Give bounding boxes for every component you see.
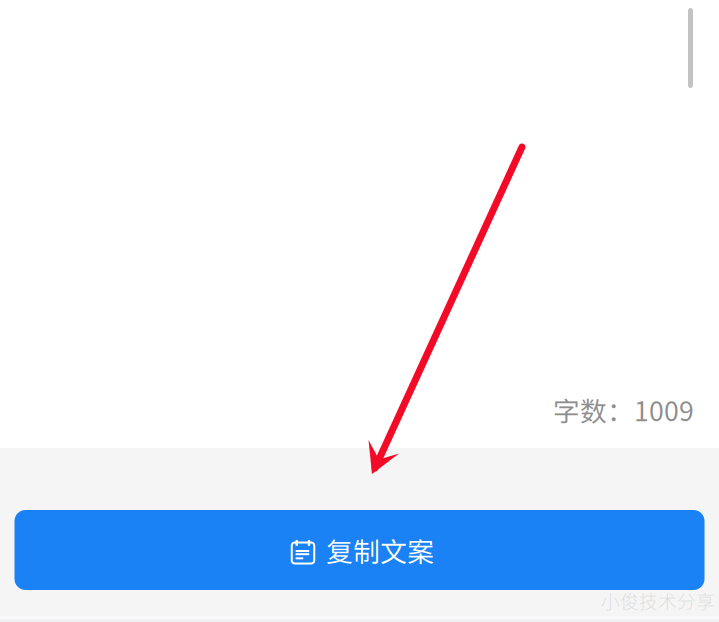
button[interactable]: 复制文案 (14, 510, 704, 590)
staticText: 复制文案 (326, 531, 434, 569)
staticText: 小俊技术分享 (601, 587, 715, 614)
staticText: 字数：1009 (553, 390, 694, 429)
